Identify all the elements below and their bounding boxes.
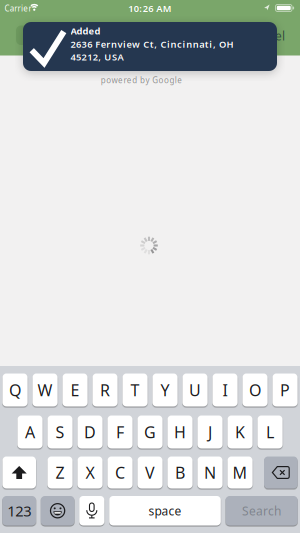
button[interactable]: Emoji — [41, 496, 74, 525]
button[interactable]: R — [92, 373, 118, 406]
button[interactable]: space — [109, 496, 221, 525]
button[interactable]: Y — [152, 373, 178, 406]
staticText: D — [84, 421, 96, 443]
button[interactable]: E — [62, 373, 88, 406]
button[interactable]: X — [77, 456, 103, 488]
button[interactable]: Z — [47, 456, 73, 488]
staticText: 10:26 AM — [128, 2, 172, 15]
staticText: V — [145, 462, 155, 483]
button[interactable]: Search — [226, 496, 298, 525]
staticText: Z — [55, 462, 64, 483]
button[interactable]: Delete — [264, 456, 298, 488]
staticText: A — [25, 421, 35, 443]
staticText: L — [266, 421, 274, 443]
button[interactable]: A — [17, 415, 43, 448]
button[interactable]: S — [47, 415, 73, 448]
staticText: P — [280, 379, 290, 401]
staticText: N — [204, 462, 216, 483]
button[interactable]: G — [137, 415, 163, 448]
staticText: Carrier — [4, 3, 32, 14]
button[interactable]: 123 — [2, 496, 36, 525]
staticText: I — [222, 379, 227, 401]
staticText: space — [148, 503, 181, 519]
staticText: E — [70, 379, 79, 401]
button[interactable]: L — [257, 415, 283, 448]
button[interactable]: T — [122, 373, 148, 406]
button[interactable]: P — [272, 373, 298, 406]
staticText: G — [144, 421, 156, 443]
button[interactable]: B — [167, 456, 193, 488]
button[interactable]: O — [242, 373, 268, 406]
button[interactable]: Shift — [2, 456, 36, 488]
button[interactable]: M — [227, 456, 253, 488]
button[interactable]: C — [107, 456, 133, 488]
staticText: K — [235, 421, 245, 443]
button[interactable]: F — [107, 415, 133, 448]
button[interactable]: V — [137, 456, 163, 488]
staticText: J — [208, 421, 212, 443]
staticText: B — [175, 462, 185, 483]
button[interactable]: H — [167, 415, 193, 448]
staticText: Y — [160, 379, 169, 401]
staticText: 123 — [7, 501, 31, 520]
staticText: M — [232, 462, 247, 483]
staticText: H — [174, 421, 186, 443]
staticText: C — [115, 462, 125, 483]
button[interactable]: N — [197, 456, 223, 488]
button[interactable]: D — [77, 415, 103, 448]
staticText: Added — [70, 25, 100, 37]
staticText: 45212, USA — [70, 51, 123, 63]
staticText: T — [130, 379, 139, 401]
staticText: R — [100, 379, 110, 401]
button[interactable]: W — [32, 373, 58, 406]
staticText: S — [55, 421, 64, 443]
staticText: W — [37, 379, 52, 401]
button[interactable]: K — [227, 415, 253, 448]
staticText: U — [189, 379, 201, 401]
staticText: O — [249, 379, 261, 401]
staticText: 2636 Fernview Ct, Cincinnati, OH — [70, 38, 233, 50]
button[interactable]: Q — [2, 373, 28, 406]
button[interactable]: Dictate — [79, 496, 104, 525]
button[interactable]: I — [212, 373, 238, 406]
staticText: Cancel — [247, 28, 285, 44]
staticText: X — [85, 462, 94, 483]
button[interactable]: U — [182, 373, 208, 406]
staticText: Q — [9, 379, 21, 401]
staticText: F — [116, 421, 124, 443]
button[interactable]: Cancel — [247, 28, 285, 44]
button[interactable]: J — [197, 415, 223, 448]
staticText: Search — [242, 503, 281, 519]
staticText: powered by Google — [101, 75, 182, 85]
